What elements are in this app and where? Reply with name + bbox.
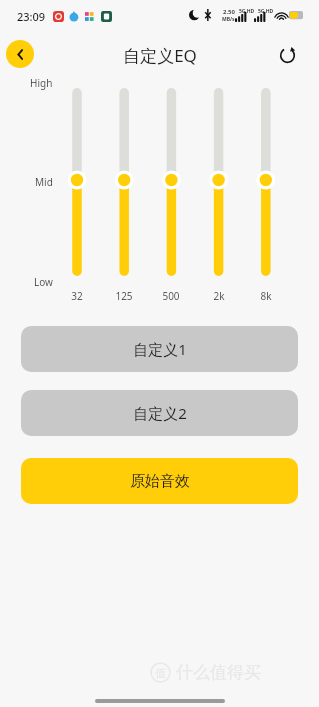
button[interactable]: 自定义2 — [21, 390, 298, 436]
staticText: 125 — [115, 289, 133, 303]
staticText: 23:09 — [17, 9, 46, 24]
staticText: MB/s — [222, 16, 235, 23]
staticText: 值 — [155, 666, 166, 680]
staticText: Low — [34, 275, 53, 289]
staticText: 原始音效 — [130, 472, 190, 491]
staticText: 自定义EQ — [123, 44, 197, 67]
staticText: 2.50 — [223, 8, 235, 16]
button[interactable]: Band 125 hertz — [104, 86, 144, 296]
button[interactable]: Back — [6, 40, 34, 68]
button[interactable]: Band 500 hertz — [151, 86, 191, 296]
staticText: 8k — [260, 289, 272, 303]
staticText: 500 — [162, 289, 180, 303]
button[interactable]: Band 8k hertz — [246, 86, 286, 296]
button[interactable]: Refresh — [274, 42, 300, 68]
button[interactable]: 自定义1 — [21, 326, 298, 372]
staticText: 自定义1 — [133, 339, 187, 359]
button[interactable]: 原始音效 — [21, 458, 298, 504]
button[interactable]: Band 32 hertz — [57, 86, 97, 296]
staticText: 5G HD — [258, 8, 274, 15]
staticText: 什么值得买 — [176, 662, 261, 683]
staticText: 2k — [213, 289, 225, 303]
staticText: 32 — [71, 289, 83, 303]
staticText: 自定义2 — [133, 403, 187, 423]
button[interactable]: Band 2k hertz — [199, 86, 239, 296]
staticText: Mid — [35, 175, 53, 189]
staticText: High — [30, 76, 53, 90]
staticText: 5G HD — [239, 8, 255, 15]
